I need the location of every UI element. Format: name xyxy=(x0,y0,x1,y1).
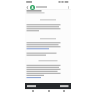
button[interactable] xyxy=(59,83,71,89)
button[interactable] xyxy=(25,83,39,89)
button[interactable] xyxy=(30,4,66,10)
button[interactable]: More options xyxy=(66,4,71,10)
button[interactable]: Home xyxy=(41,89,56,93)
button[interactable]: Recents xyxy=(56,89,71,93)
button[interactable]: Back xyxy=(25,89,41,93)
button[interactable]: Back xyxy=(25,4,30,10)
